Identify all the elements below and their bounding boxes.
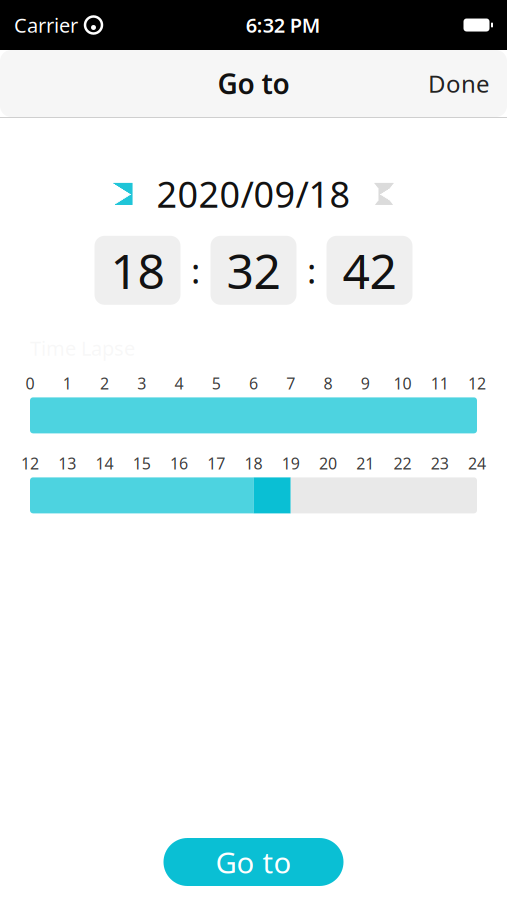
staticText: 32 [226, 238, 280, 302]
staticText: 3 [137, 373, 146, 394]
staticText: 22 [393, 453, 411, 474]
staticText: 23 [431, 453, 449, 474]
button[interactable]: Previous day [99, 175, 138, 213]
staticText: 11 [431, 373, 449, 394]
staticText: Carrier [14, 12, 78, 38]
button[interactable]: Done [411, 56, 507, 111]
staticText: 20 [319, 453, 337, 474]
staticText [78, 10, 84, 40]
staticText: 15 [133, 453, 151, 474]
staticText: 12 [468, 373, 486, 394]
staticText: 18 [244, 453, 262, 474]
staticText: 6:32 PM [246, 12, 321, 38]
staticText: Done [428, 68, 490, 99]
staticText: 14 [95, 453, 113, 474]
button[interactable]: Go to [163, 838, 343, 886]
staticText: 1 [63, 373, 72, 394]
staticText: 8 [323, 373, 332, 394]
staticText: 16 [170, 453, 188, 474]
staticText: 19 [282, 453, 300, 474]
button[interactable]: 18 [94, 236, 180, 305]
button[interactable]: 42 [326, 236, 412, 305]
staticText: 24 [468, 453, 486, 474]
staticText: 7 [286, 373, 295, 394]
staticText: 2020/09/18 [156, 170, 350, 218]
staticText: 10 [393, 373, 411, 394]
staticText: 18 [110, 238, 164, 302]
staticText: 13 [58, 453, 76, 474]
staticText: : [191, 247, 200, 293]
staticText: 5 [212, 373, 221, 394]
staticText: 6 [249, 373, 258, 394]
button[interactable]: 32 [210, 236, 296, 305]
staticText: Go to [217, 65, 289, 102]
staticText: 17 [207, 453, 225, 474]
staticText: : [307, 247, 316, 293]
staticText: 42 [342, 238, 396, 302]
staticText: 0 [25, 373, 34, 394]
staticText: 21 [356, 453, 374, 474]
button[interactable]: Next day [368, 175, 407, 213]
staticText: 9 [361, 373, 370, 394]
staticText: Go to [215, 842, 291, 881]
staticText: 4 [174, 373, 183, 394]
staticText: 2 [100, 373, 109, 394]
staticText: 12 [21, 453, 39, 474]
